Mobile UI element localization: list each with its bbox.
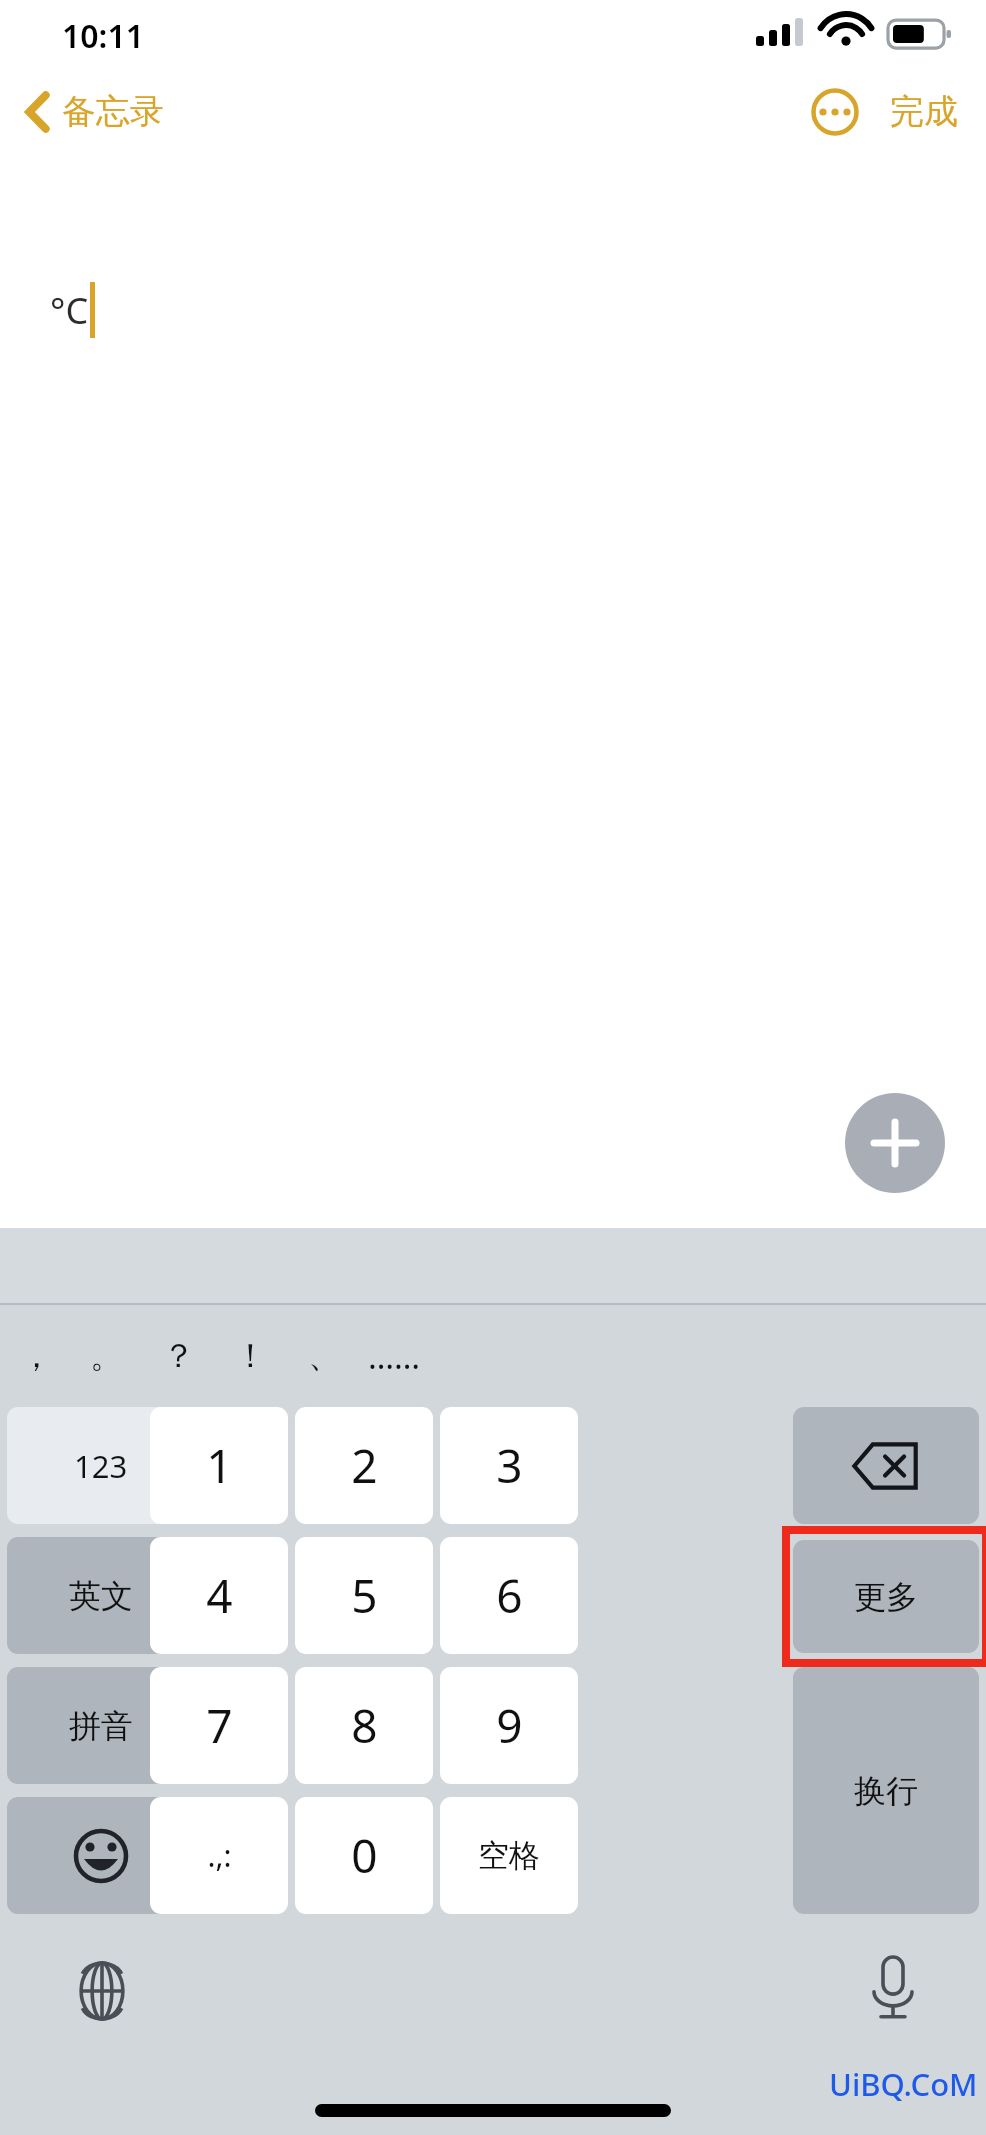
button[interactable]: 5	[295, 1537, 433, 1654]
button[interactable]: Add	[845, 1093, 945, 1193]
button[interactable]: ！	[214, 1305, 286, 1407]
button[interactable]: 2	[295, 1407, 433, 1524]
staticText: 5	[351, 1564, 378, 1627]
button[interactable]: Delete	[793, 1407, 979, 1524]
button[interactable]: 9	[440, 1667, 578, 1784]
button[interactable]: 1	[150, 1407, 288, 1524]
staticText: ，	[20, 1335, 53, 1377]
staticText: 3	[496, 1434, 523, 1497]
staticText: 1	[206, 1434, 233, 1497]
button[interactable]: .,:	[150, 1797, 288, 1914]
button[interactable]: 6	[440, 1537, 578, 1654]
button[interactable]: 英文	[7, 1537, 195, 1654]
button[interactable]: 备忘录	[18, 82, 172, 141]
staticText: 换行	[854, 1771, 918, 1811]
staticText: 。	[90, 1335, 123, 1377]
staticText: 备忘录	[62, 90, 164, 133]
button[interactable]: ……	[358, 1305, 430, 1407]
button[interactable]: 7	[150, 1667, 288, 1784]
button[interactable]: 4	[150, 1537, 288, 1654]
staticText: 2	[351, 1434, 378, 1497]
staticText: 空格	[478, 1836, 540, 1875]
staticText: ？	[162, 1335, 195, 1377]
button[interactable]: More	[806, 83, 864, 141]
button[interactable]: 拼音	[7, 1667, 195, 1784]
button[interactable]: ，	[0, 1305, 72, 1407]
staticText: UiBQ.CoM	[829, 2063, 978, 2105]
button[interactable]: Switch keyboard	[60, 1949, 144, 2033]
button[interactable]: Dictation	[850, 1945, 936, 2031]
staticText: 完成	[890, 90, 958, 133]
staticText: 123	[74, 1445, 128, 1487]
staticText: 0	[351, 1824, 378, 1887]
staticText: 8	[351, 1694, 378, 1757]
button[interactable]: 空格	[440, 1797, 578, 1914]
staticText: 10:11	[62, 14, 145, 58]
button[interactable]: ？	[142, 1305, 214, 1407]
button[interactable]: 3	[440, 1407, 578, 1524]
staticText: .,:	[207, 1835, 232, 1876]
staticText: 4	[206, 1564, 233, 1627]
button[interactable]: 。	[70, 1305, 142, 1407]
staticText: °C	[50, 286, 89, 335]
button[interactable]: 换行	[793, 1667, 979, 1914]
button[interactable]: 0	[295, 1797, 433, 1914]
button[interactable]: 、	[288, 1305, 360, 1407]
button[interactable]: 8	[295, 1667, 433, 1784]
button[interactable]: Emoji	[7, 1797, 195, 1914]
staticText: ！	[234, 1335, 267, 1377]
button[interactable]: 123	[7, 1407, 195, 1524]
staticText: 6	[496, 1564, 523, 1627]
button[interactable]: 完成	[884, 80, 964, 143]
staticText: 拼音	[69, 1706, 133, 1746]
button[interactable]: 更多	[793, 1540, 979, 1653]
staticText: 9	[496, 1694, 523, 1757]
staticText: 英文	[69, 1576, 133, 1616]
staticText: 7	[206, 1694, 233, 1757]
staticText: 、	[308, 1335, 341, 1377]
staticText: ……	[368, 1334, 421, 1379]
staticText: 更多	[854, 1577, 918, 1617]
